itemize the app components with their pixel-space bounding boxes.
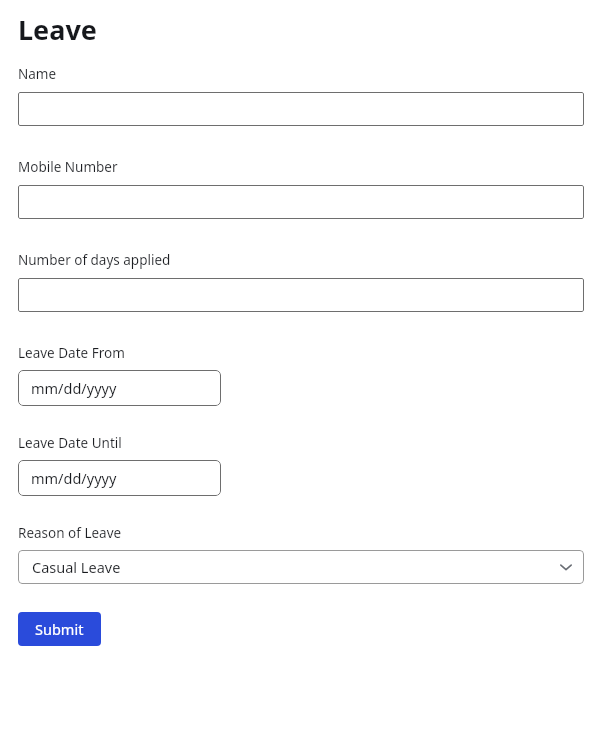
staticText: mm/dd/yyyy [31, 468, 117, 488]
button[interactable]: Name input [18, 92, 584, 126]
staticText: Reason of Leave [18, 524, 122, 542]
button[interactable]: Leave Date From [18, 370, 221, 406]
staticText: Name [18, 65, 57, 83]
button[interactable]: Mobile Number input [18, 185, 584, 219]
staticText: Leave [18, 11, 97, 48]
button[interactable]: Number of days applied input [18, 278, 584, 312]
button[interactable]: Submit [18, 612, 101, 646]
button[interactable]: Casual Leave [18, 550, 584, 584]
button[interactable]: Leave Date Until [18, 460, 221, 496]
staticText: Leave Date From [18, 344, 125, 362]
other: Open reason list [559, 560, 573, 574]
staticText: Number of days applied [18, 251, 171, 269]
staticText: Mobile Number [18, 158, 118, 176]
staticText: Casual Leave [32, 557, 121, 577]
staticText: Submit [35, 619, 84, 639]
staticText: Leave Date Until [18, 434, 122, 452]
staticText: mm/dd/yyyy [31, 378, 117, 398]
